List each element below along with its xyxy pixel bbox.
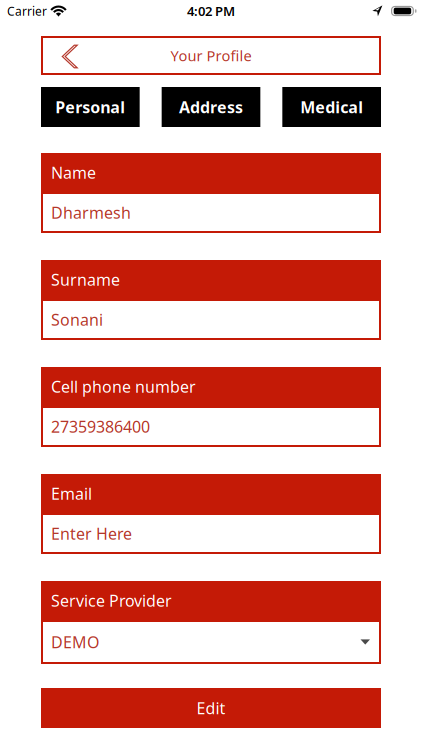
staticText: Surname	[51, 269, 120, 290]
staticText: Enter Here	[51, 523, 132, 544]
staticText: Name	[51, 162, 96, 183]
button[interactable]: Your Profile	[41, 36, 381, 75]
staticText: Address	[179, 96, 243, 118]
staticText: DEMO	[51, 631, 99, 653]
button[interactable]: Address	[162, 87, 260, 127]
staticText: Sonani	[51, 309, 103, 330]
staticText: Medical	[300, 96, 363, 118]
staticText: Carrier	[7, 3, 47, 19]
staticText: Your Profile	[170, 46, 251, 65]
staticText: Email	[51, 483, 92, 504]
staticText: Cell phone number	[51, 376, 196, 397]
staticText: Edit	[196, 697, 225, 719]
staticText: 27359386400	[51, 416, 150, 437]
button[interactable]: Medical	[282, 87, 381, 127]
button[interactable]: Edit	[41, 688, 381, 728]
staticText: Personal	[55, 96, 125, 118]
staticText: Service Provider	[51, 590, 172, 611]
staticText: 4:02 PM	[187, 2, 235, 20]
staticText: Dharmesh	[51, 202, 131, 223]
button[interactable]: Personal	[41, 87, 140, 127]
